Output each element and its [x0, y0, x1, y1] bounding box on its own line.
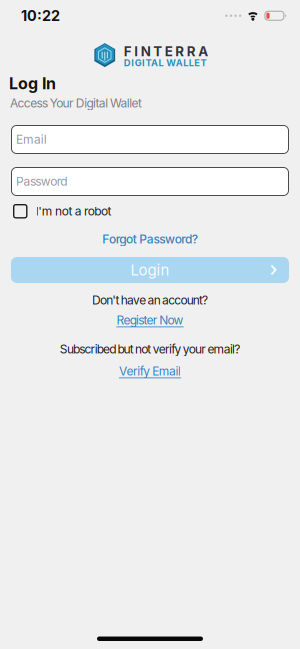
staticText: Verify Email [119, 364, 181, 378]
staticText: Subscribed but not verify your email? [60, 342, 240, 356]
staticText: Access Your Digital Wallet [10, 96, 142, 110]
button[interactable]: I'm not a robot [0, 204, 300, 218]
staticText: 10:22 [21, 7, 60, 24]
button[interactable]: Register Now [116, 313, 184, 327]
staticText: Log In [9, 74, 56, 93]
button[interactable]: Login [11, 257, 289, 283]
staticText: Forgot Password? [102, 232, 198, 246]
button[interactable]: Password [11, 167, 289, 196]
staticText: I'm not a robot [35, 204, 112, 218]
staticText: FINTERRA [124, 43, 208, 59]
staticText: Email [16, 132, 47, 147]
staticText: Don't have an account? [92, 293, 208, 307]
button[interactable]: Verify Email [119, 364, 181, 378]
button[interactable]: Email [11, 125, 289, 154]
staticText: Register Now [116, 313, 184, 327]
button[interactable]: Forgot Password? [102, 232, 198, 246]
staticText: DIGITAL WALLET [124, 57, 207, 68]
staticText: Login [130, 261, 169, 279]
staticText: Password [16, 174, 67, 189]
